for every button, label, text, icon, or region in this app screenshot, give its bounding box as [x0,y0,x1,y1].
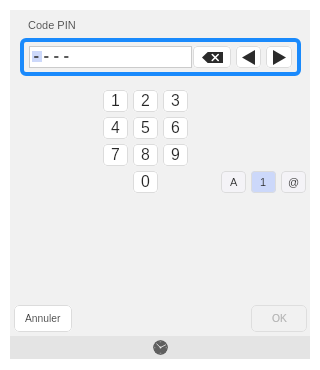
staticText: 0 [141,173,150,191]
staticText: OK [272,313,287,325]
staticText: 5 [141,119,150,137]
staticText: A [230,176,238,188]
staticText: Annuler [25,313,61,325]
button[interactable]: 3 [163,90,188,112]
button[interactable]: 1 [103,90,128,112]
button[interactable]: 6 [163,117,188,139]
button[interactable]: Suivant [266,46,292,68]
button[interactable]: 8 [133,144,158,166]
button[interactable]: 4 [103,117,128,139]
button[interactable]: A [221,171,246,193]
staticText: Code PIN [28,19,76,31]
button[interactable]: OK [251,305,307,332]
staticText: 6 [171,119,180,137]
staticText: @ [288,176,300,188]
staticText: 3 [171,92,180,110]
staticText: 1 [111,92,120,110]
button[interactable]: 5 [133,117,158,139]
button[interactable]: Annuler [14,305,72,332]
button[interactable]: 2 [133,90,158,112]
button[interactable]: Effacer [193,46,231,68]
button[interactable]: Precedent [236,46,261,68]
staticText: 9 [171,146,180,164]
staticText: 2 [141,92,150,110]
button[interactable]: 0 [133,171,158,193]
staticText: 7 [111,146,120,164]
staticText: 1 [260,176,267,188]
button[interactable]: 9 [163,144,188,166]
button[interactable]: Horloge [153,340,168,355]
staticText: 4 [111,119,120,137]
button[interactable] [29,46,192,68]
button[interactable]: @ [281,171,306,193]
staticText: 8 [141,146,150,164]
button[interactable]: 1 [251,171,276,193]
button[interactable]: 7 [103,144,128,166]
